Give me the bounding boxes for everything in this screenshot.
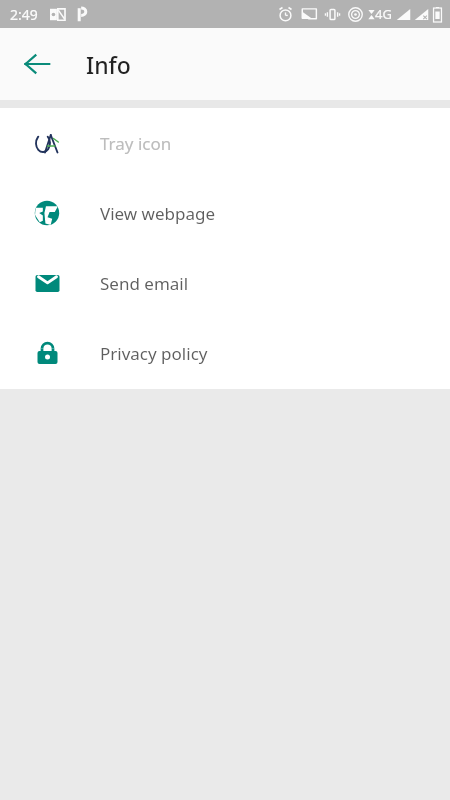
button[interactable]: Tray icon xyxy=(0,108,450,178)
staticText: 2:49 xyxy=(10,5,38,24)
staticText: 4G xyxy=(375,5,392,23)
staticText: View webpage xyxy=(100,202,216,225)
button[interactable]: Send email xyxy=(0,248,450,318)
staticText: Send email xyxy=(100,272,189,295)
button[interactable]: Back xyxy=(14,41,60,87)
staticText: Info xyxy=(86,49,131,80)
button[interactable]: View webpage xyxy=(0,178,450,248)
button[interactable]: Privacy policy xyxy=(0,318,450,388)
staticText: Privacy policy xyxy=(100,342,208,365)
staticText: Tray icon xyxy=(100,132,172,155)
